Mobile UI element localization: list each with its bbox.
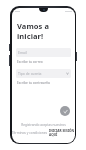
button[interactable]: Tipo de cuenta: [16, 69, 71, 78]
staticText: Escribe tu contraseña: [17, 81, 50, 85]
button[interactable]: Continuar: [60, 106, 70, 116]
staticText: Escribe tu correo: [17, 60, 43, 64]
staticText: Vamos a iniciar!: [17, 21, 70, 41]
staticText: Términos y condiciones: [12, 131, 49, 135]
button[interactable]: INICIAR SESIÓN AQUÍ: [49, 129, 75, 137]
button[interactable]: Email: [16, 48, 71, 57]
staticText: INICIAR SESIÓN AQUÍ: [49, 129, 75, 137]
staticText: Registrando aceptas nuestros: [17, 123, 70, 127]
staticText: Email: [18, 50, 27, 55]
staticText: Tipo de cuenta: [18, 71, 42, 76]
